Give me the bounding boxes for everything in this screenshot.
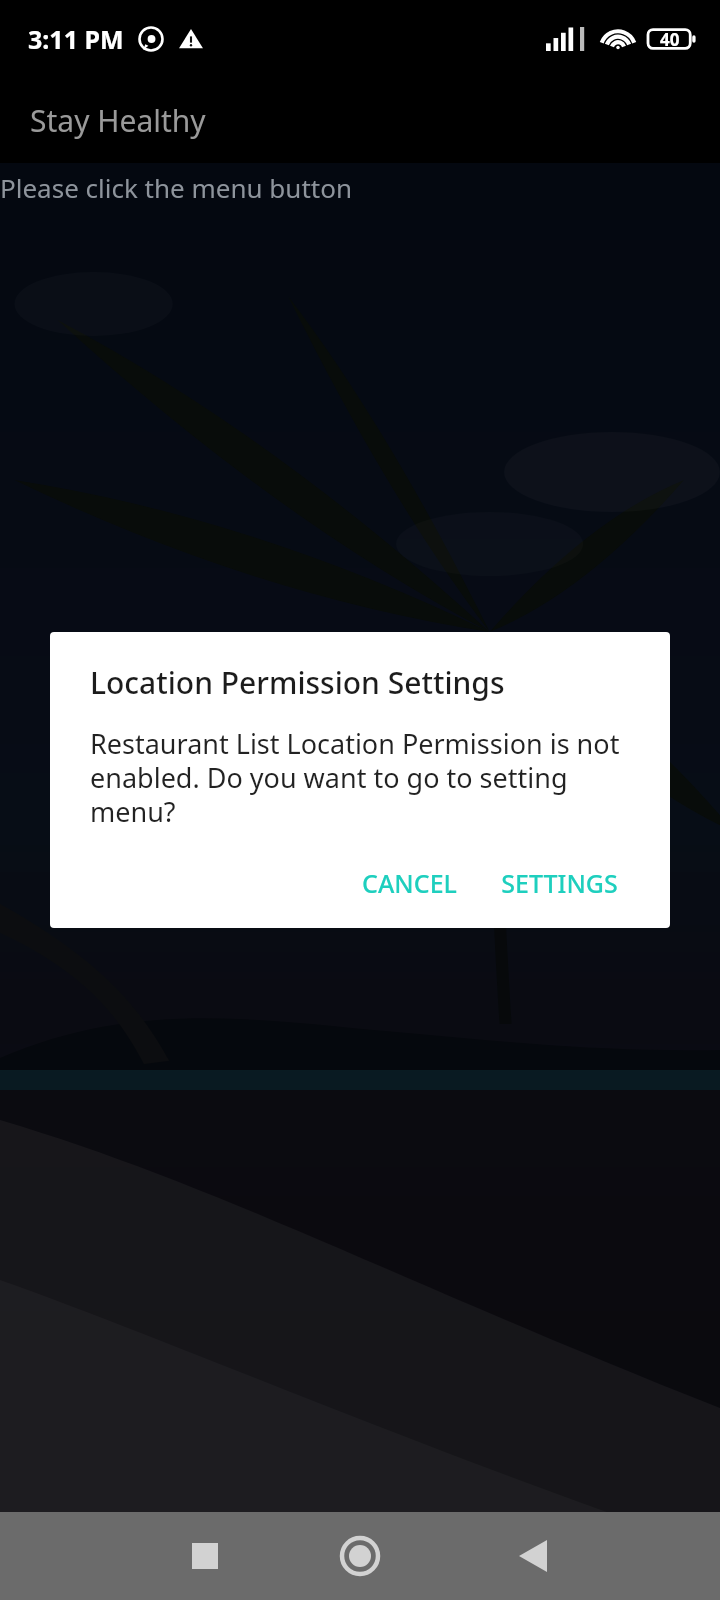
button[interactable]: SETTINGS <box>487 858 632 908</box>
button[interactable]: Recent apps <box>170 1521 240 1591</box>
button[interactable]: Home <box>321 1517 399 1595</box>
button[interactable]: Back <box>498 1521 568 1591</box>
staticText: Location Permission Settings <box>90 662 505 703</box>
staticText: 3:11 PM <box>28 22 124 56</box>
staticText: Stay Healthy <box>30 100 206 141</box>
staticText: SETTINGS <box>501 866 618 900</box>
staticText: 40 <box>660 28 680 51</box>
staticText: Restaurant List Location Permission is n… <box>90 725 640 830</box>
button[interactable]: CANCEL <box>348 858 471 908</box>
staticText: CANCEL <box>362 866 457 900</box>
staticText: Please click the menu button <box>0 170 352 205</box>
